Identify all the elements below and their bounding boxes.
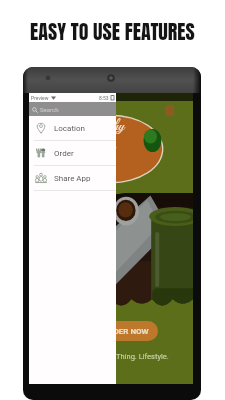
button[interactable]: Order	[29, 141, 116, 165]
staticText: Healthy	[77, 117, 125, 136]
staticText: Eat Healthy. Good Thing. Lifestyle.	[55, 352, 169, 361]
button[interactable]: Cart	[165, 105, 174, 116]
button[interactable]: Share App	[29, 166, 116, 190]
staticText: 8:53	[99, 95, 109, 101]
staticText: EASY TO USE FEATURES	[30, 16, 195, 46]
staticText: Share App	[54, 174, 91, 183]
button[interactable]: Location	[29, 116, 116, 140]
button[interactable]: Search	[29, 102, 116, 116]
staticText: ORDER NOW	[103, 327, 149, 336]
staticText: Order	[54, 149, 74, 158]
staticText: Fresh	[83, 137, 116, 156]
staticText: Search	[40, 106, 59, 113]
button[interactable]: ORDER NOW	[94, 321, 158, 341]
staticText: Preview	[31, 95, 49, 101]
staticText: Location	[54, 124, 85, 133]
